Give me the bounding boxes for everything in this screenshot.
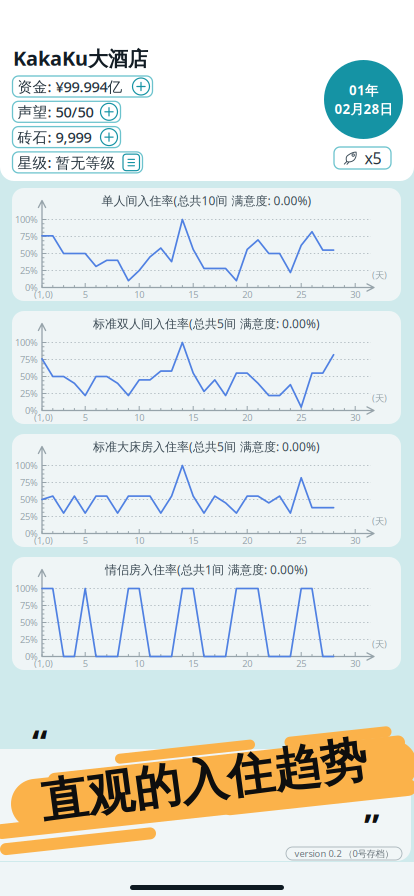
- staticText: 20: [242, 534, 252, 547]
- staticText: 15: [188, 657, 198, 670]
- staticText: 25: [296, 534, 306, 547]
- staticText: 20: [242, 288, 252, 301]
- staticText: version 0.2 （0号存档）: [294, 847, 393, 860]
- staticText: 5: [83, 657, 88, 670]
- staticText: 75%: [20, 599, 38, 612]
- staticText: 30: [350, 534, 360, 547]
- button[interactable]: 资金: ¥99.994亿: [12, 76, 152, 97]
- staticText: 30: [350, 657, 360, 670]
- staticText: 50%: [20, 370, 38, 383]
- staticText: 砖石: 9,999: [17, 127, 91, 147]
- staticText: (1,0): [34, 534, 53, 547]
- staticText: (天): [372, 392, 387, 404]
- staticText: 50%: [20, 616, 38, 629]
- staticText: 100%: [15, 459, 38, 472]
- staticText: 单人间入住率(总共10间 满意度: 0.00%): [101, 192, 311, 208]
- staticText: x5: [364, 147, 381, 169]
- staticText: 标准双人间入住率(总共5间 满意度: 0.00%): [93, 315, 320, 331]
- staticText: 75%: [20, 476, 38, 489]
- staticText: (天): [372, 269, 387, 281]
- staticText: (1,0): [34, 657, 53, 670]
- staticText: 25: [296, 411, 306, 424]
- staticText: 声望: 50/50: [17, 102, 93, 122]
- staticText: 75%: [20, 353, 38, 366]
- staticText: 15: [188, 288, 198, 301]
- staticText: 02月28日: [334, 100, 392, 118]
- staticText: 10: [134, 657, 144, 670]
- staticText: 75%: [20, 230, 38, 243]
- staticText: 标准大床房入住率(总共5间 满意度: 0.00%): [93, 438, 320, 454]
- staticText: 5: [83, 534, 88, 547]
- staticText: 资金: ¥99.994亿: [17, 77, 122, 96]
- staticText: (天): [372, 515, 387, 527]
- staticText: 5: [83, 288, 88, 301]
- staticText: 100%: [15, 336, 38, 349]
- button[interactable]: 声望: 50/50: [12, 101, 120, 122]
- staticText: 25%: [20, 633, 38, 646]
- staticText: 直观的入住趋势: [39, 752, 368, 810]
- staticText: 0%: [25, 650, 38, 663]
- staticText: 25: [296, 657, 306, 670]
- button[interactable]: 砖石: 9,999: [12, 127, 120, 148]
- staticText: 25%: [20, 510, 38, 523]
- button[interactable]: 星级: 暂无等级: [12, 152, 142, 173]
- staticText: 20: [242, 411, 252, 424]
- staticText: 15: [188, 411, 198, 424]
- staticText: 10: [134, 288, 144, 301]
- staticText: 20: [242, 657, 252, 670]
- staticText: 30: [350, 288, 360, 301]
- staticText: (1,0): [34, 288, 53, 301]
- staticText: 10: [134, 411, 144, 424]
- staticText: 100%: [15, 213, 38, 226]
- staticText: 25%: [20, 387, 38, 400]
- staticText: 01年: [349, 81, 378, 99]
- staticText: 50%: [20, 247, 38, 260]
- staticText: 30: [350, 411, 360, 424]
- staticText: 25%: [20, 264, 38, 277]
- button[interactable]: x5: [334, 147, 391, 169]
- staticText: 15: [188, 534, 198, 547]
- staticText: KakaKu大酒店: [13, 45, 148, 71]
- staticText: 情侣房入住率(总共1间 满意度: 0.00%): [105, 561, 308, 577]
- staticText: 100%: [15, 582, 38, 595]
- staticText: 0%: [25, 404, 38, 417]
- staticText: (1,0): [34, 411, 53, 424]
- staticText: 5: [83, 411, 88, 424]
- staticText: “: [32, 718, 47, 764]
- staticText: 0%: [25, 281, 38, 294]
- staticText: 10: [134, 534, 144, 547]
- staticText: 0%: [25, 527, 38, 540]
- staticText: ”: [364, 802, 379, 848]
- staticText: 50%: [20, 493, 38, 506]
- staticText: (天): [372, 638, 387, 650]
- staticText: 星级: 暂无等级: [17, 153, 115, 172]
- staticText: 25: [296, 288, 306, 301]
